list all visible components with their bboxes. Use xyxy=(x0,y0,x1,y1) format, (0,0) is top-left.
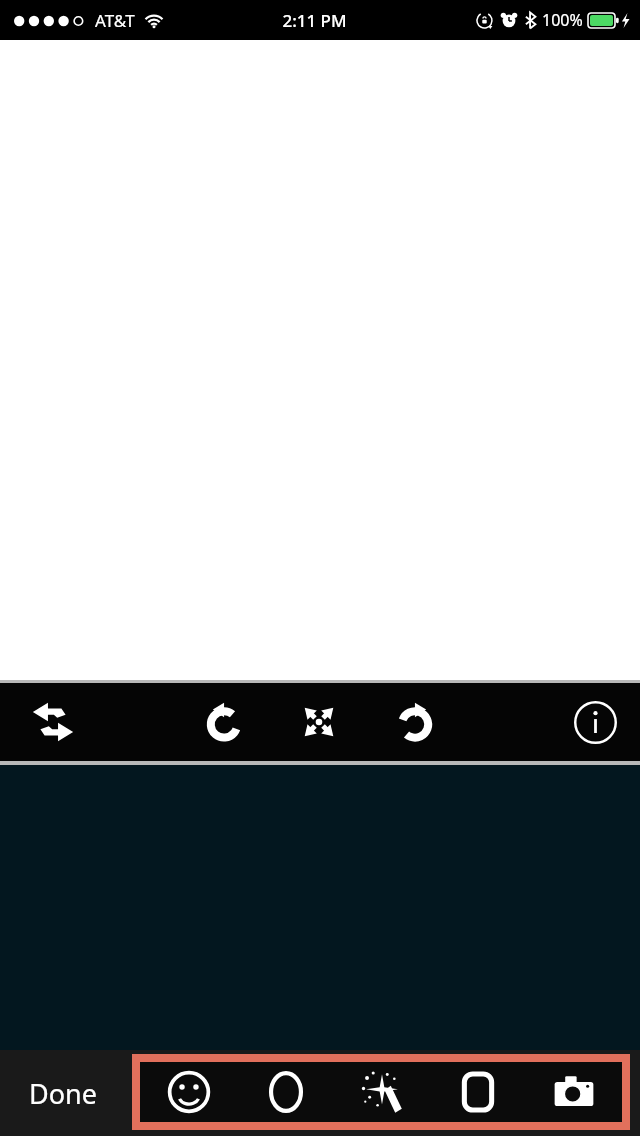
button[interactable]: Rotate left xyxy=(193,691,255,753)
staticText: Done xyxy=(29,1075,97,1112)
button[interactable]: Expand xyxy=(288,691,350,753)
button[interactable]: Flip xyxy=(22,691,84,753)
button[interactable]: Sticker xyxy=(140,1062,237,1122)
staticText: 2:11 PM xyxy=(282,9,347,32)
button[interactable]: Rotate right xyxy=(384,691,446,753)
button[interactable]: Info xyxy=(564,691,626,753)
button[interactable]: Circle xyxy=(237,1062,334,1122)
button[interactable]: Frame xyxy=(430,1062,526,1122)
staticText: 100% xyxy=(542,9,583,31)
button[interactable]: Magic wand xyxy=(334,1062,430,1122)
button[interactable]: Done xyxy=(8,1058,118,1128)
staticText: AT&T xyxy=(95,9,135,32)
button[interactable]: Camera xyxy=(526,1062,622,1122)
